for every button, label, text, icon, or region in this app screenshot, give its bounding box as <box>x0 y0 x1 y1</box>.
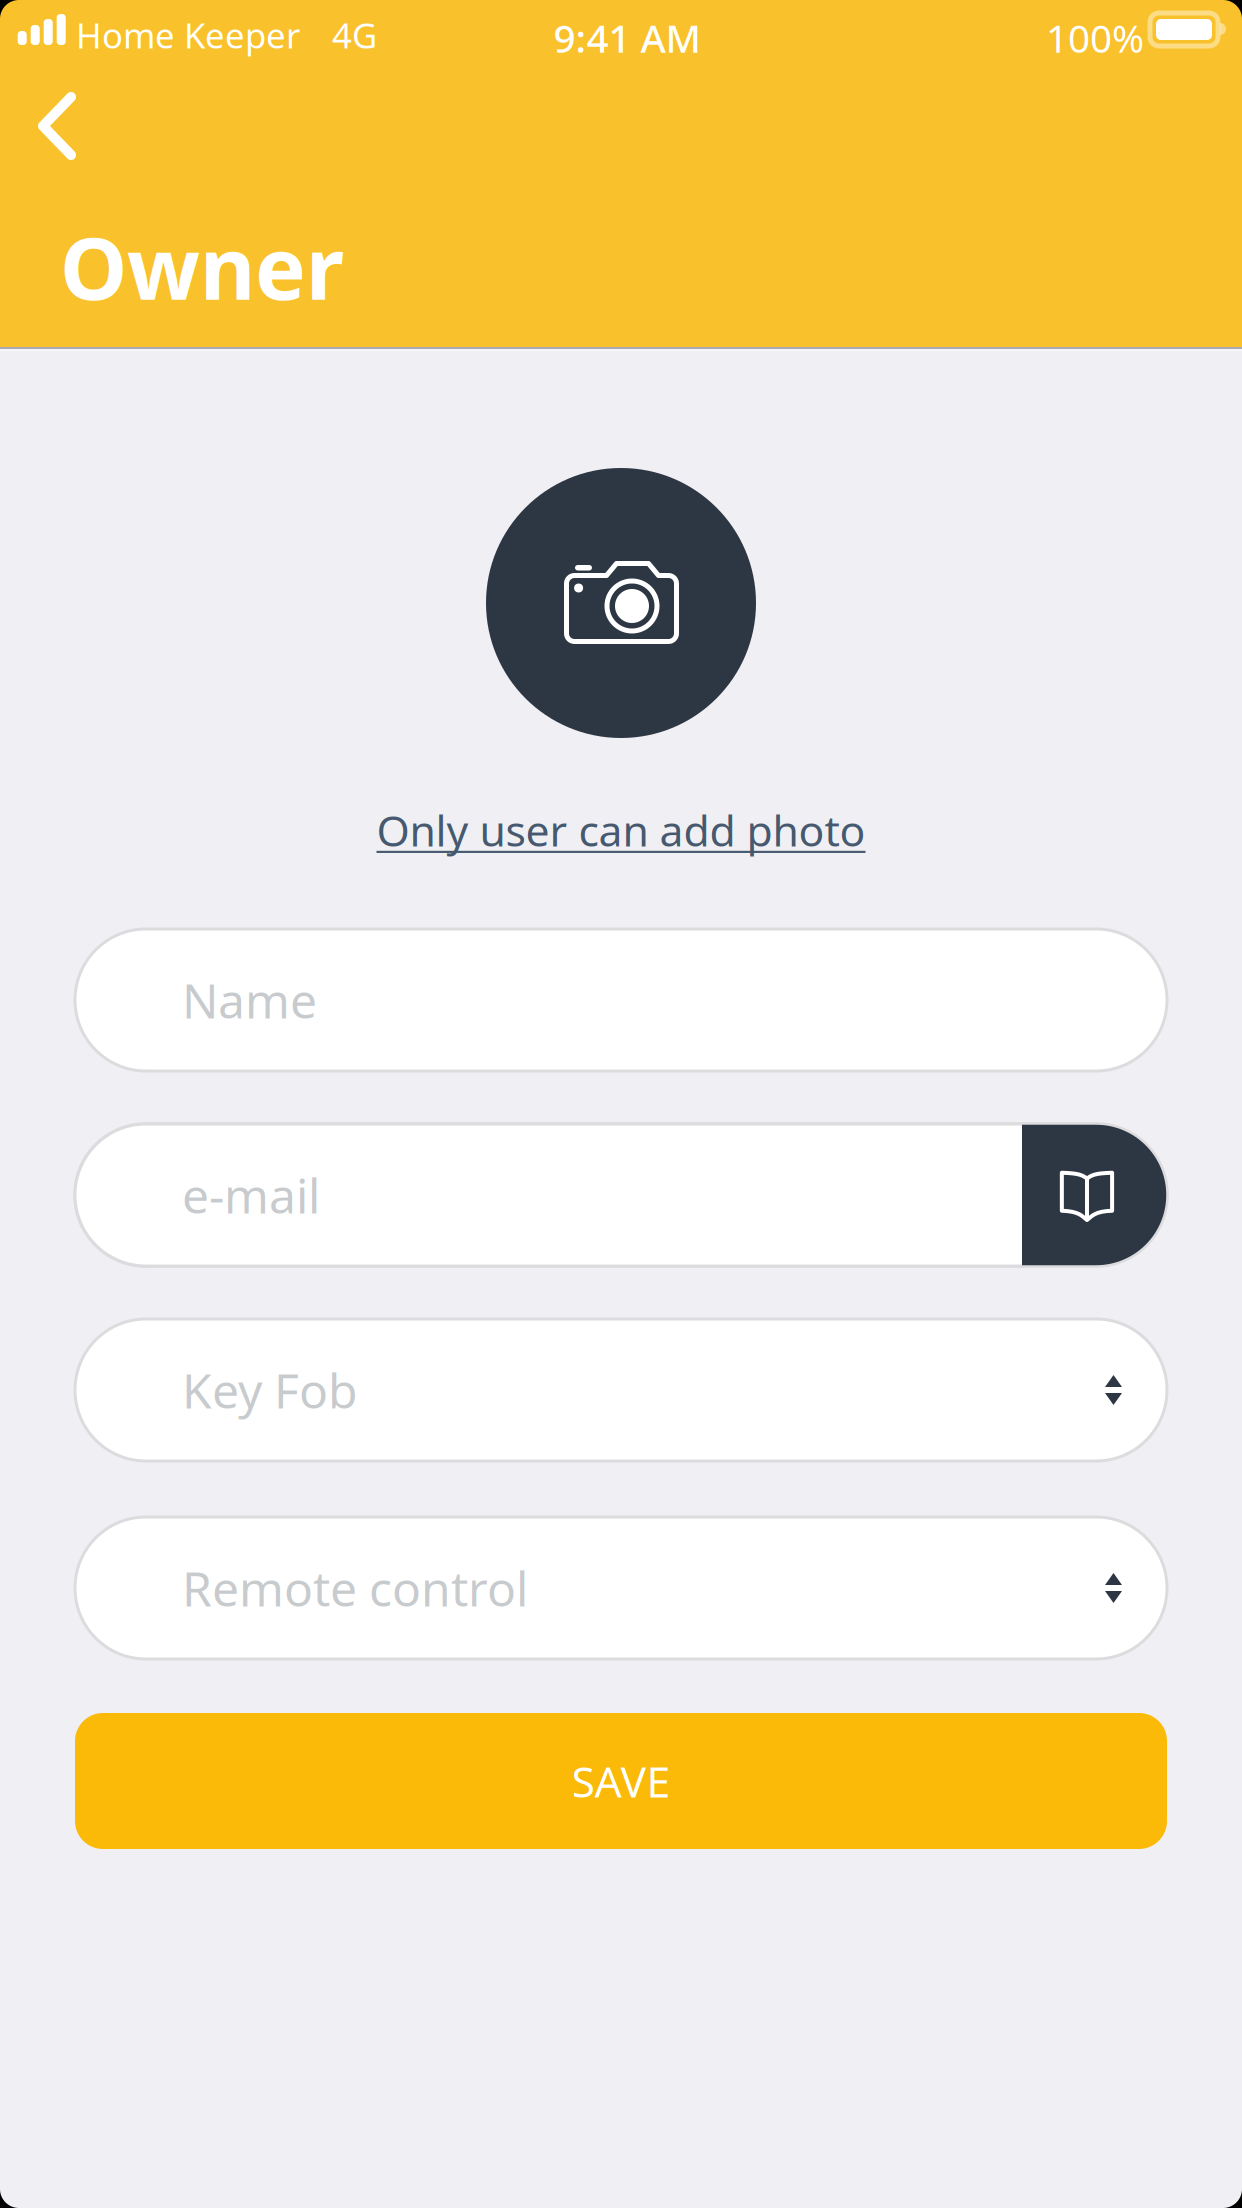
staticText: Key Fob <box>182 1358 358 1422</box>
button[interactable]: Only user can add photo <box>0 800 1242 860</box>
staticText: 4G <box>332 12 377 58</box>
staticText: Home Keeper <box>76 12 300 58</box>
staticText: Name <box>182 968 317 1032</box>
button[interactable]: Address book <box>1022 1124 1167 1266</box>
button[interactable]: Name <box>75 929 1167 1071</box>
button[interactable]: Remote control <box>75 1517 1167 1659</box>
button[interactable]: SAVE <box>75 1713 1167 1849</box>
staticText: 9:41 AM <box>553 12 700 63</box>
staticText: 100% <box>1046 12 1144 63</box>
staticText: Only user can add photo <box>376 802 865 858</box>
staticText: Remote control <box>182 1556 528 1620</box>
button[interactable]: Add photo <box>486 468 756 738</box>
staticText: SAVE <box>571 1753 670 1809</box>
staticText: e-mail <box>182 1163 320 1227</box>
button[interactable]: Back <box>1 70 113 182</box>
staticText: Owner <box>60 210 344 323</box>
button[interactable]: Key Fob <box>75 1319 1167 1461</box>
